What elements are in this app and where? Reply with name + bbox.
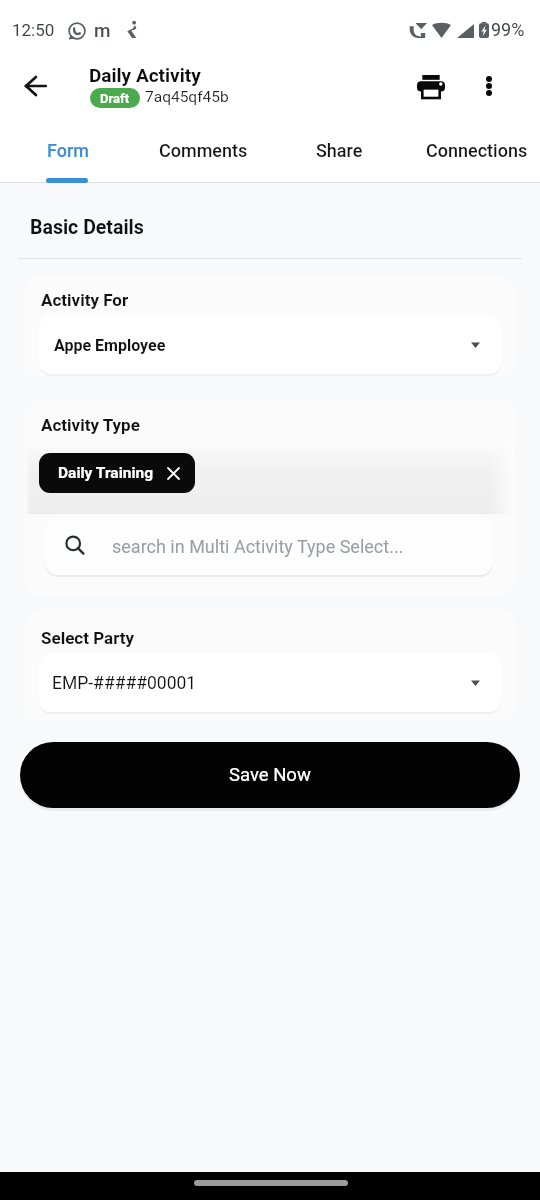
staticText: 7aq45qf45b [145, 88, 229, 106]
staticText: Daily Activity [89, 64, 201, 86]
staticText: Save Now [229, 764, 311, 786]
staticText: Basic Details [30, 216, 144, 239]
staticText: Draft [100, 91, 130, 106]
button[interactable]: Comments [145, 126, 262, 183]
staticText: Share [316, 140, 363, 161]
staticText: m [94, 19, 111, 41]
staticText: Select Party [41, 628, 135, 648]
button[interactable]: Connections [412, 126, 540, 183]
button[interactable]: Print [407, 62, 455, 110]
staticText: search in Multi Activity Type Select... [112, 536, 404, 557]
button[interactable]: Save Now [20, 742, 520, 808]
staticText: Activity Type [41, 415, 140, 435]
staticText: Daily Training [58, 464, 154, 482]
button[interactable]: search in Multi Activity Type Select... [45, 517, 493, 575]
staticText: EMP-#####00001 [52, 673, 197, 694]
button[interactable]: Form [33, 126, 103, 183]
button[interactable]: Back [9, 62, 57, 110]
staticText: Appe Employee [54, 336, 166, 355]
button[interactable]: Share [302, 126, 377, 183]
staticText: 99% [491, 19, 525, 40]
button[interactable]: Daily Training [39, 453, 195, 493]
staticText: Activity For [41, 290, 129, 310]
button[interactable]: More options [465, 62, 513, 110]
staticText: Connections [426, 140, 528, 161]
button[interactable]: Appe Employee [39, 316, 501, 374]
staticText: Comments [159, 140, 248, 161]
button[interactable]: EMP-#####00001 [39, 654, 501, 712]
staticText: 12:50 [12, 20, 55, 40]
staticText: Form [47, 140, 89, 161]
